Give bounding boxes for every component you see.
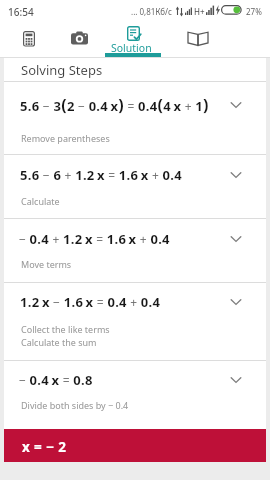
staticText: Calculate bbox=[21, 195, 60, 207]
staticText: 16:54 bbox=[8, 5, 34, 19]
button[interactable]: 1.2 x − 1.6 x = 0.4 + 0.4 bbox=[4, 282, 266, 360]
staticText: Solution bbox=[111, 41, 152, 55]
button[interactable] bbox=[170, 26, 226, 57]
staticText: Remove parentheses bbox=[21, 132, 110, 144]
staticText: − 0.4 x = 0.8 bbox=[19, 371, 93, 389]
staticText: H+ bbox=[194, 6, 205, 17]
staticText: Move terms bbox=[21, 258, 72, 270]
button[interactable]: 5.6 − 3(2 − 0.4 x) = 0.4(4 x + 1) bbox=[4, 82, 266, 154]
button[interactable]: − 0.4 + 1.2 x = 1.6 x + 0.4 bbox=[4, 218, 266, 282]
button[interactable]: − 0.4 x = 0.8 bbox=[4, 360, 266, 429]
staticText: 5.6 − 3(2 − 0.4 x) = 0.4(4 x + 1) bbox=[20, 94, 209, 116]
staticText: Solving Steps bbox=[21, 61, 103, 79]
staticText: Calculate the sum bbox=[21, 336, 97, 348]
staticText: x = − 2 bbox=[22, 438, 67, 456]
button[interactable]: 5.6 − 6 + 1.2 x = 1.6 x + 0.4 bbox=[4, 154, 266, 218]
staticText: 27% bbox=[246, 6, 262, 17]
button[interactable] bbox=[2, 26, 54, 57]
staticText: Divide both sides by − 0.4 bbox=[21, 399, 129, 411]
staticText: − 0.4 + 1.2 x = 1.6 x + 0.4 bbox=[19, 230, 170, 248]
staticText: ... 0,81Кб/c bbox=[131, 6, 172, 17]
staticText: 5.6 − 6 + 1.2 x = 1.6 x + 0.4 bbox=[20, 166, 182, 184]
button[interactable] bbox=[54, 26, 106, 57]
staticText: Collect the like terms bbox=[21, 323, 110, 335]
button[interactable]: Solution bbox=[104, 25, 162, 57]
staticText: 1.2 x − 1.6 x = 0.4 + 0.4 bbox=[20, 293, 161, 311]
button[interactable]: x = − 2 bbox=[4, 429, 266, 462]
